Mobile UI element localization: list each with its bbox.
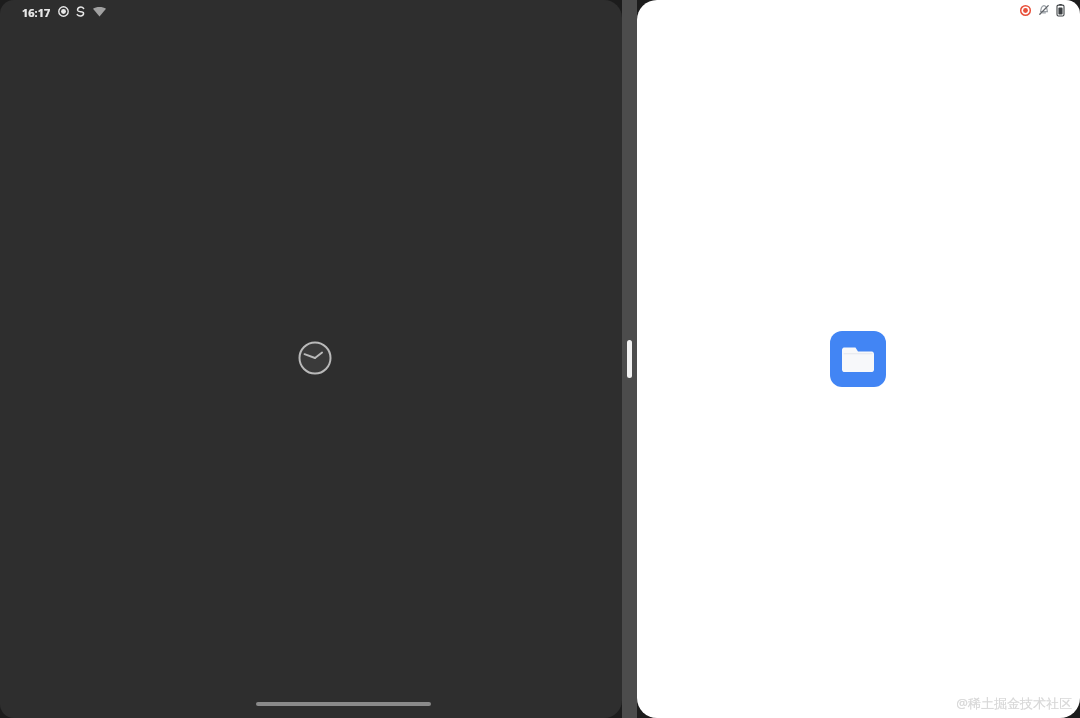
staticText: @稀土掘金技术社区 (956, 694, 1072, 712)
staticText: 16:17 (22, 5, 51, 20)
button[interactable]: Clock (297, 340, 333, 376)
button[interactable]: Resize split screen (622, 0, 637, 718)
button[interactable]: Files (830, 331, 886, 387)
